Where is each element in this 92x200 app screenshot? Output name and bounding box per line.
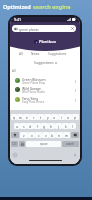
staticText: Plantbox: [39, 39, 56, 44]
button[interactable]: s: [20, 123, 27, 129]
staticText: All: [12, 69, 16, 73]
button[interactable]: h: [48, 123, 55, 129]
button[interactable]: c: [35, 132, 42, 138]
staticText: z: [23, 133, 25, 138]
button[interactable]: z: [20, 132, 28, 138]
staticText: Suggestions: [48, 52, 67, 56]
button[interactable]: Back: [12, 25, 76, 32]
staticText: x: [31, 133, 33, 138]
button[interactable]: Change keyboard: [19, 141, 25, 147]
button[interactable]: Suggestions: [47, 52, 68, 56]
staticText: Yang Plant House: [22, 100, 45, 104]
button[interactable]: v: [42, 132, 49, 138]
button[interactable]: Yang Yang: [10, 95, 80, 104]
staticText: j: [58, 124, 59, 129]
staticText: t: [40, 115, 42, 120]
button[interactable]: More options: [73, 88, 77, 92]
button[interactable]: p: [72, 114, 79, 120]
button[interactable]: o: [65, 114, 72, 120]
button[interactable]: d: [27, 123, 34, 129]
button[interactable]: Wild Garage: [10, 85, 80, 94]
staticText: s: [23, 124, 25, 129]
button[interactable]: News: [30, 52, 41, 56]
staticText: y: [47, 115, 49, 120]
staticText: 123: [12, 142, 17, 146]
button[interactable]: i: [58, 114, 65, 120]
button[interactable]: k: [62, 123, 69, 129]
button[interactable]: space: [26, 141, 61, 147]
staticText: e: [26, 115, 28, 120]
staticText: search: [66, 142, 75, 146]
button[interactable]: Backspace: [71, 132, 79, 138]
staticText: d: [29, 124, 32, 129]
staticText: r: [33, 115, 35, 120]
other: Back: [14, 27, 18, 31]
staticText: All: [19, 52, 23, 56]
button[interactable]: All: [18, 52, 24, 56]
staticText: 9:41: [14, 17, 22, 22]
other: Clear: [71, 27, 74, 30]
button[interactable]: 123: [11, 141, 18, 147]
staticText: b: [51, 133, 54, 138]
staticText: q: [13, 115, 16, 120]
button[interactable]: x: [28, 132, 35, 138]
staticText: green plants: [19, 27, 39, 31]
staticText: f: [37, 124, 39, 129]
staticText: p: [74, 115, 77, 120]
button[interactable]: y: [44, 114, 51, 120]
button[interactable]: r: [30, 114, 37, 120]
button[interactable]: w: [17, 114, 23, 120]
button[interactable]: More options: [73, 79, 77, 83]
staticText: k: [65, 124, 67, 129]
staticText: m: [65, 133, 69, 138]
button[interactable]: f: [34, 123, 41, 129]
button[interactable]: e: [23, 114, 30, 120]
staticText: Wild Plants Studio: [22, 90, 45, 94]
button[interactable]: More options: [73, 98, 77, 102]
staticText: o: [67, 115, 70, 120]
staticText: News: [31, 52, 40, 56]
staticText: search engine: [33, 3, 71, 10]
button[interactable]: l: [69, 123, 76, 129]
staticText: l: [72, 124, 73, 129]
staticText: a: [16, 124, 18, 129]
button[interactable]: u: [51, 114, 58, 120]
staticText: i: [61, 115, 62, 120]
staticText: h: [50, 124, 53, 129]
staticText: w: [19, 115, 22, 120]
button[interactable]: t: [37, 114, 44, 120]
staticText: Suggestions: [34, 60, 54, 65]
button[interactable]: Shift: [11, 132, 19, 138]
button[interactable]: Green Blossom: [10, 76, 80, 85]
button[interactable]: n: [56, 132, 63, 138]
staticText: Wild Garage: [22, 86, 41, 90]
staticText: n: [58, 133, 61, 138]
staticText: g: [43, 124, 46, 129]
staticText: space: [40, 142, 48, 146]
staticText: Green Blossom: [22, 77, 46, 81]
staticText: Optimized: [3, 3, 33, 10]
staticText: u: [53, 115, 56, 120]
staticText: v: [45, 133, 47, 138]
button[interactable]: j: [55, 123, 62, 129]
button[interactable]: a: [14, 123, 20, 129]
button[interactable]: b: [49, 132, 56, 138]
button[interactable]: search: [62, 141, 79, 147]
button[interactable]: Dictate: [72, 152, 78, 158]
staticText: Yang Yang: [22, 96, 39, 100]
button[interactable]: g: [41, 123, 48, 129]
button[interactable]: Emoji: [12, 152, 18, 158]
button[interactable]: q: [11, 114, 17, 120]
button[interactable]: m: [63, 132, 70, 138]
staticText: Green Plants Shop: [22, 81, 46, 85]
staticText: c: [38, 133, 40, 138]
